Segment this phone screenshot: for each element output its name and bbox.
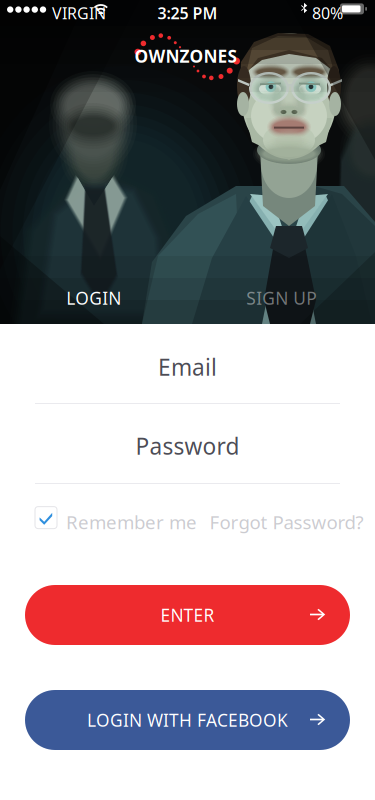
staticText: SIGN UP	[246, 286, 316, 309]
staticText: Password	[135, 431, 239, 461]
button[interactable]: LOGIN WITH FACEBOOK	[25, 690, 350, 750]
staticText: Remember me	[66, 510, 197, 534]
staticText: LOGIN WITH FACEBOOK	[87, 708, 288, 731]
staticText: Email	[158, 352, 217, 382]
staticText: Forgot Password?	[209, 510, 363, 534]
button[interactable]: Forgot Password?	[233, 506, 340, 530]
staticText: VIRGIN	[52, 2, 106, 24]
button[interactable]: Remember me	[35, 506, 175, 530]
staticText: ENTER	[160, 603, 214, 626]
button[interactable]: SIGN UP	[187, 272, 375, 324]
staticText: OWNZONES	[134, 44, 237, 67]
staticText: 80%	[312, 2, 343, 24]
button[interactable]: LOGIN	[0, 272, 187, 324]
button[interactable]: ENTER	[25, 585, 350, 645]
staticText: 3:25 PM	[157, 2, 217, 24]
staticText: LOGIN	[66, 286, 121, 309]
